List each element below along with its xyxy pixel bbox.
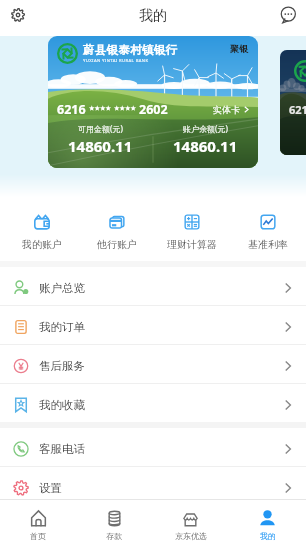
staticText: 蔚县银泰村镇银行 (83, 43, 178, 57)
staticText: 14860.11 (173, 136, 238, 156)
staticText: YUXIAN YINTAI RURAL BANK (83, 58, 149, 64)
button[interactable]: 客服电话 (0, 428, 306, 466)
staticText: 客服电话 (39, 442, 85, 456)
staticText: 售后服务 (39, 359, 85, 373)
button[interactable]: 他行账户 (79, 201, 154, 257)
staticText: 2602 (139, 101, 168, 118)
staticText: 我的订单 (39, 320, 85, 334)
button[interactable]: 首页 (0, 503, 76, 547)
staticText: 账户余额(元) (183, 123, 228, 134)
staticText: 14860.11 (68, 136, 133, 156)
button[interactable]: Settings (4, 1, 32, 29)
staticText: 基准利率 (248, 238, 288, 251)
staticText: 可用金额(元) (78, 123, 123, 134)
staticText: 我的 (139, 7, 167, 25)
staticText: 账户总览 (39, 281, 85, 295)
button[interactable]: 我的收藏 (0, 384, 306, 422)
staticText: 设置 (39, 481, 62, 495)
button[interactable]: 理财计算器 (154, 201, 230, 257)
button[interactable]: 我的 (229, 503, 306, 547)
staticText: 理财计算器 (167, 238, 217, 251)
button[interactable]: 京东优选 (152, 503, 229, 547)
staticText: 存款 (106, 531, 122, 541)
staticText: 首页 (30, 531, 46, 541)
button[interactable]: 基准利率 (230, 201, 306, 257)
button[interactable]: 蔚县银泰村镇银行 (48, 36, 258, 168)
button[interactable]: 我的账户 (4, 201, 79, 257)
button[interactable]: Messages (274, 1, 302, 29)
button[interactable]: 账户总览 (0, 267, 306, 305)
button[interactable]: 存款 (76, 503, 152, 547)
staticText: 聚银 (230, 43, 248, 54)
button[interactable]: 我的订单 (0, 306, 306, 344)
staticText: 6216 (57, 101, 86, 118)
staticText: 6216 (289, 102, 306, 117)
staticText: 我的账户 (22, 238, 62, 251)
staticText: 我的收藏 (39, 398, 85, 412)
staticText: 他行账户 (97, 238, 137, 251)
button[interactable]: 6216 (280, 50, 306, 155)
button[interactable]: 设置 (0, 467, 306, 505)
staticText: 京东优选 (175, 531, 207, 541)
button[interactable]: 售后服务 (0, 345, 306, 383)
staticText: 我的 (260, 531, 276, 541)
staticText: 实体卡 (213, 104, 240, 115)
